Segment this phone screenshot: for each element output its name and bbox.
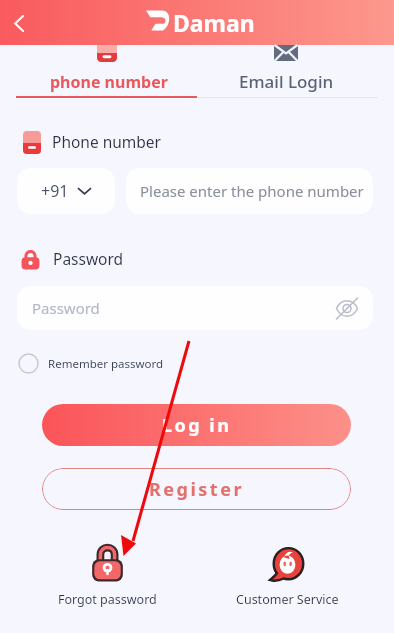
button[interactable]: Log in xyxy=(42,404,351,446)
button[interactable]: Email Login xyxy=(179,45,394,98)
staticText: Daman xyxy=(173,7,255,38)
button[interactable]: Remember password xyxy=(18,353,164,374)
button[interactable]: phone number xyxy=(0,45,217,98)
button[interactable]: Show password xyxy=(333,294,361,322)
button[interactable]: Customer Service xyxy=(227,548,347,608)
staticText: Remember password xyxy=(48,356,164,372)
staticText: Password xyxy=(53,248,124,269)
button[interactable]: Please enter the phone number xyxy=(126,168,373,214)
staticText: Forgot password xyxy=(58,591,157,608)
other: Email xyxy=(274,45,298,61)
button[interactable]: Register xyxy=(42,468,351,510)
staticText: Password xyxy=(32,298,100,318)
button[interactable]: +91 xyxy=(17,168,115,214)
staticText: Customer Service xyxy=(236,591,339,608)
staticText: Please enter the phone number xyxy=(140,181,364,201)
staticText: Register xyxy=(149,477,244,502)
staticText: Email Login xyxy=(239,70,334,93)
button[interactable]: Forgot password xyxy=(47,544,167,608)
button[interactable]: Password xyxy=(17,286,373,330)
staticText: Phone number xyxy=(52,131,162,152)
staticText: +91 xyxy=(41,180,69,202)
button[interactable]: Back xyxy=(1,5,37,41)
button[interactable]: Back xyxy=(1,5,37,41)
staticText: Daman xyxy=(173,7,255,38)
staticText: Log in xyxy=(162,413,232,438)
staticText: phone number xyxy=(50,71,168,93)
